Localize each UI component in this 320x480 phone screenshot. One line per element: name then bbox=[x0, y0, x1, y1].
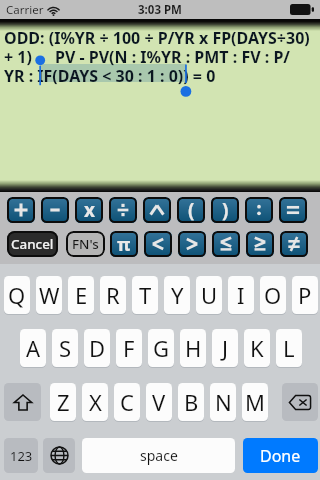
staticText: H bbox=[185, 333, 202, 363]
button[interactable]: caret bbox=[143, 197, 171, 223]
button[interactable]: FN's bbox=[66, 231, 105, 257]
button[interactable]: lt bbox=[144, 231, 172, 257]
button[interactable]: T bbox=[132, 276, 158, 314]
button[interactable]: W bbox=[36, 276, 62, 314]
button[interactable]: space bbox=[82, 438, 235, 473]
button[interactable]: x bbox=[75, 197, 103, 223]
staticText: T bbox=[139, 280, 152, 310]
staticText: F bbox=[123, 333, 135, 363]
button[interactable]: K bbox=[244, 329, 270, 367]
button[interactable]: Cancel bbox=[7, 231, 58, 257]
staticText: Cancel bbox=[11, 235, 54, 253]
button[interactable]: I bbox=[228, 276, 254, 314]
button[interactable]: V bbox=[146, 383, 172, 421]
staticText: ODD: (I%YR ÷ 100 ÷ P/YR x FP(DAYS÷30) bbox=[4, 27, 310, 49]
staticText: O bbox=[264, 280, 282, 310]
button[interactable]: 123 bbox=[4, 438, 38, 473]
button[interactable]: ) bbox=[211, 197, 239, 223]
staticText: J bbox=[222, 333, 229, 363]
button[interactable]: div bbox=[109, 197, 137, 223]
staticText: N bbox=[215, 387, 232, 417]
button[interactable]: B bbox=[178, 383, 204, 421]
button[interactable]: ( bbox=[177, 197, 205, 223]
button[interactable]: S bbox=[52, 329, 78, 367]
button[interactable]: M bbox=[242, 383, 268, 421]
staticText: PV - PV(N : I%YR : PMT : FV : P/ bbox=[55, 46, 290, 68]
button[interactable]: minus bbox=[41, 197, 69, 223]
button[interactable]: ge bbox=[246, 231, 274, 257]
staticText: P bbox=[298, 280, 312, 310]
staticText: FN's bbox=[72, 235, 99, 253]
staticText: ( bbox=[188, 197, 195, 223]
staticText: E bbox=[75, 280, 88, 310]
button[interactable]: le bbox=[212, 231, 240, 257]
button[interactable]: E bbox=[68, 276, 94, 314]
button[interactable]: eq bbox=[279, 197, 307, 223]
staticText: 123 bbox=[10, 447, 33, 465]
button[interactable]: Done bbox=[243, 438, 318, 473]
button[interactable]: pi bbox=[110, 231, 138, 257]
button[interactable]: J bbox=[212, 329, 238, 367]
button[interactable]: ne bbox=[280, 231, 308, 257]
button[interactable]: R bbox=[100, 276, 126, 314]
staticText: 3:03 PM bbox=[138, 2, 182, 18]
button[interactable]: N bbox=[210, 383, 236, 421]
staticText: π bbox=[117, 232, 131, 257]
staticText: Y bbox=[171, 280, 184, 310]
button[interactable]: plus bbox=[7, 197, 35, 223]
button[interactable]: C bbox=[114, 383, 140, 421]
button[interactable]: Y bbox=[164, 276, 190, 314]
button[interactable]: Backspace bbox=[282, 383, 318, 421]
staticText: Q bbox=[8, 280, 26, 310]
staticText: R bbox=[106, 280, 120, 310]
button[interactable]: L bbox=[276, 329, 302, 367]
button[interactable]: F bbox=[116, 329, 142, 367]
button[interactable]: A bbox=[20, 329, 46, 367]
button[interactable]: Q bbox=[4, 276, 30, 314]
button[interactable]: gt bbox=[178, 231, 206, 257]
staticText: x bbox=[84, 197, 95, 223]
button[interactable]: H bbox=[180, 329, 206, 367]
staticText: Done bbox=[260, 445, 301, 467]
staticText: B bbox=[184, 387, 199, 417]
staticText: W bbox=[39, 280, 60, 310]
button[interactable]: Shift bbox=[4, 383, 41, 421]
staticText: S bbox=[59, 333, 72, 363]
button[interactable]: Z bbox=[50, 383, 76, 421]
staticText: I bbox=[237, 280, 245, 310]
button[interactable]: G bbox=[148, 329, 174, 367]
staticText: K bbox=[250, 333, 264, 363]
button[interactable]: P bbox=[292, 276, 318, 314]
staticText: U bbox=[201, 280, 218, 310]
staticText: D bbox=[89, 333, 106, 363]
staticText: X bbox=[89, 387, 102, 417]
staticText: C bbox=[120, 387, 134, 417]
button[interactable]: O bbox=[260, 276, 286, 314]
staticText: Z bbox=[57, 387, 70, 417]
staticText: A bbox=[26, 333, 41, 363]
button[interactable]: D bbox=[84, 329, 110, 367]
staticText: Carrier bbox=[6, 2, 44, 18]
staticText: M bbox=[245, 387, 265, 417]
staticText: V bbox=[152, 387, 166, 417]
staticText: ) bbox=[222, 197, 229, 223]
button[interactable]: U bbox=[196, 276, 222, 314]
button[interactable]: X bbox=[82, 383, 108, 421]
button[interactable]: colon bbox=[245, 197, 273, 223]
staticText: YR : IF(DAYS < 30 : 1 : 0)) = 0 bbox=[4, 65, 216, 87]
staticText: G bbox=[153, 333, 170, 363]
staticText: space bbox=[140, 446, 178, 465]
staticText: + 1) bbox=[4, 46, 32, 68]
button[interactable]: Change keyboard bbox=[43, 438, 75, 473]
staticText: L bbox=[283, 333, 295, 363]
